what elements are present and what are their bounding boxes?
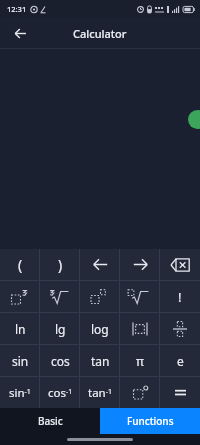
button[interactable]: arccos — [40, 377, 80, 408]
staticText: Calculator — [73, 26, 127, 41]
staticText: lg — [55, 321, 66, 337]
button[interactable]: Move cursor right — [120, 249, 160, 280]
staticText: ! — [178, 288, 182, 306]
button[interactable]: tan — [80, 345, 120, 376]
button[interactable]: Functions — [100, 408, 200, 434]
button[interactable]: Back — [8, 21, 32, 45]
button[interactable]: Cube — [0, 281, 40, 312]
button[interactable]: Equals — [160, 377, 200, 408]
button[interactable]: lg — [40, 313, 80, 344]
staticText: cos-1 — [48, 385, 73, 401]
staticText: sin-1 — [9, 385, 31, 401]
button[interactable]: Right parenthesis — [40, 249, 80, 280]
button[interactable]: ln — [0, 313, 40, 344]
staticText: π — [136, 353, 144, 369]
staticText: ) — [58, 255, 63, 274]
button[interactable]: Fraction — [160, 313, 200, 344]
staticText: Basic — [38, 414, 63, 428]
button[interactable]: Basic — [0, 408, 100, 434]
button[interactable]: arctan — [80, 377, 120, 408]
button[interactable]: sin — [0, 345, 40, 376]
button[interactable]: cos — [40, 345, 80, 376]
button[interactable]: Degree — [120, 377, 160, 408]
button[interactable]: Floating action bubble — [188, 110, 200, 129]
button[interactable]: e — [160, 345, 200, 376]
button[interactable]: Move cursor left — [80, 249, 120, 280]
button[interactable]: Cube root — [40, 281, 80, 312]
staticText: cos — [51, 353, 70, 369]
staticText: ln — [15, 321, 26, 337]
staticText: log — [91, 321, 109, 337]
button[interactable]: pi — [120, 345, 160, 376]
button[interactable]: Factorial — [160, 281, 200, 312]
staticText: tan — [91, 353, 110, 369]
staticText: tan-1 — [88, 385, 112, 401]
button[interactable]: Left parenthesis — [0, 249, 40, 280]
staticText: Functions — [127, 414, 174, 428]
button[interactable]: Power — [80, 281, 120, 312]
staticText: 12:31 — [7, 4, 27, 14]
staticText: sin — [12, 353, 29, 369]
button[interactable]: Backspace — [160, 249, 200, 280]
button[interactable]: log — [80, 313, 120, 344]
staticText: ( — [18, 255, 23, 274]
staticText: e — [177, 353, 184, 369]
button[interactable]: Absolute value — [120, 313, 160, 344]
button[interactable]: Nth root — [120, 281, 160, 312]
button[interactable]: arcsin — [0, 377, 40, 408]
